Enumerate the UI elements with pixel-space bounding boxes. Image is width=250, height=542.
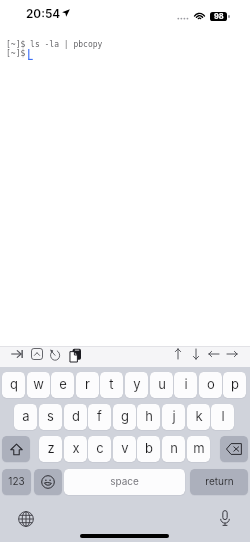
button[interactable]: e bbox=[51, 372, 74, 398]
button[interactable]: q bbox=[2, 372, 25, 398]
button[interactable]: Right bbox=[223, 345, 241, 363]
button[interactable]: w bbox=[27, 372, 50, 398]
staticText: p bbox=[231, 376, 239, 392]
button[interactable]: d bbox=[64, 404, 87, 430]
button[interactable]: Control bbox=[28, 345, 46, 363]
button[interactable]: b bbox=[137, 436, 160, 462]
staticText: w bbox=[33, 376, 44, 392]
button[interactable]: Backspace bbox=[220, 436, 248, 462]
button[interactable]: s bbox=[39, 404, 62, 430]
button[interactable]: a bbox=[14, 404, 37, 430]
staticText: c bbox=[96, 440, 104, 456]
staticText: e bbox=[59, 376, 67, 392]
button[interactable]: t bbox=[100, 372, 123, 398]
button[interactable]: n bbox=[162, 436, 185, 462]
staticText: h bbox=[145, 408, 153, 424]
button[interactable]: v bbox=[113, 436, 136, 462]
button[interactable]: r bbox=[76, 372, 99, 398]
button[interactable]: Down bbox=[187, 345, 205, 363]
button[interactable]: i bbox=[174, 372, 197, 398]
button[interactable]: m bbox=[187, 436, 210, 462]
staticText: k bbox=[195, 408, 203, 424]
staticText: i bbox=[184, 376, 188, 392]
button[interactable]: Up bbox=[169, 345, 187, 363]
button[interactable]: f bbox=[88, 404, 111, 430]
staticText: v bbox=[121, 440, 129, 456]
staticText: r bbox=[85, 376, 90, 392]
button[interactable]: x bbox=[64, 436, 87, 462]
staticText: x bbox=[72, 440, 80, 456]
staticText: t bbox=[109, 376, 114, 392]
button[interactable]: l bbox=[211, 404, 234, 430]
button[interactable]: Tab bbox=[8, 345, 26, 363]
staticText: o bbox=[207, 376, 215, 392]
staticText: n bbox=[170, 440, 178, 456]
button[interactable]: 123 bbox=[2, 469, 31, 495]
button[interactable]: return bbox=[190, 469, 248, 495]
button[interactable]: k bbox=[187, 404, 210, 430]
button[interactable]: Left bbox=[205, 345, 223, 363]
button[interactable]: Paste bbox=[66, 345, 84, 365]
button[interactable]: y bbox=[125, 372, 148, 398]
staticText: d bbox=[72, 408, 80, 424]
staticText: m bbox=[193, 440, 205, 456]
staticText: b bbox=[145, 440, 153, 456]
button[interactable]: Shift bbox=[2, 436, 30, 462]
staticText: q bbox=[10, 376, 18, 392]
button[interactable]: c bbox=[88, 436, 111, 462]
button[interactable]: space bbox=[64, 469, 185, 495]
button[interactable]: h bbox=[137, 404, 160, 430]
staticText: j bbox=[172, 408, 176, 424]
staticText: l bbox=[221, 408, 225, 424]
button[interactable]: Next keyboard bbox=[15, 508, 37, 530]
button[interactable]: Emoji bbox=[34, 469, 62, 495]
button[interactable]: o bbox=[199, 372, 222, 398]
button[interactable]: g bbox=[113, 404, 136, 430]
button[interactable]: p bbox=[223, 372, 246, 398]
staticText: 20:54 bbox=[26, 7, 61, 21]
staticText: space bbox=[110, 475, 139, 487]
staticText: f bbox=[97, 408, 102, 424]
staticText: s bbox=[47, 408, 54, 424]
staticText: return bbox=[205, 475, 234, 487]
staticText: [~]$ bbox=[6, 49, 26, 58]
staticText: y bbox=[133, 376, 141, 392]
staticText: 123 bbox=[8, 475, 25, 487]
staticText: z bbox=[47, 440, 55, 456]
staticText: u bbox=[158, 376, 166, 392]
button[interactable]: Dictation bbox=[214, 507, 236, 529]
staticText: g bbox=[121, 408, 129, 424]
button[interactable]: j bbox=[162, 404, 185, 430]
staticText: [~]$ ls -la | pbcopy bbox=[6, 40, 103, 49]
button[interactable]: u bbox=[150, 372, 173, 398]
button[interactable]: z bbox=[39, 436, 62, 462]
staticText: 98 bbox=[214, 12, 224, 21]
staticText: a bbox=[22, 408, 30, 424]
button[interactable]: History bbox=[46, 345, 64, 364]
